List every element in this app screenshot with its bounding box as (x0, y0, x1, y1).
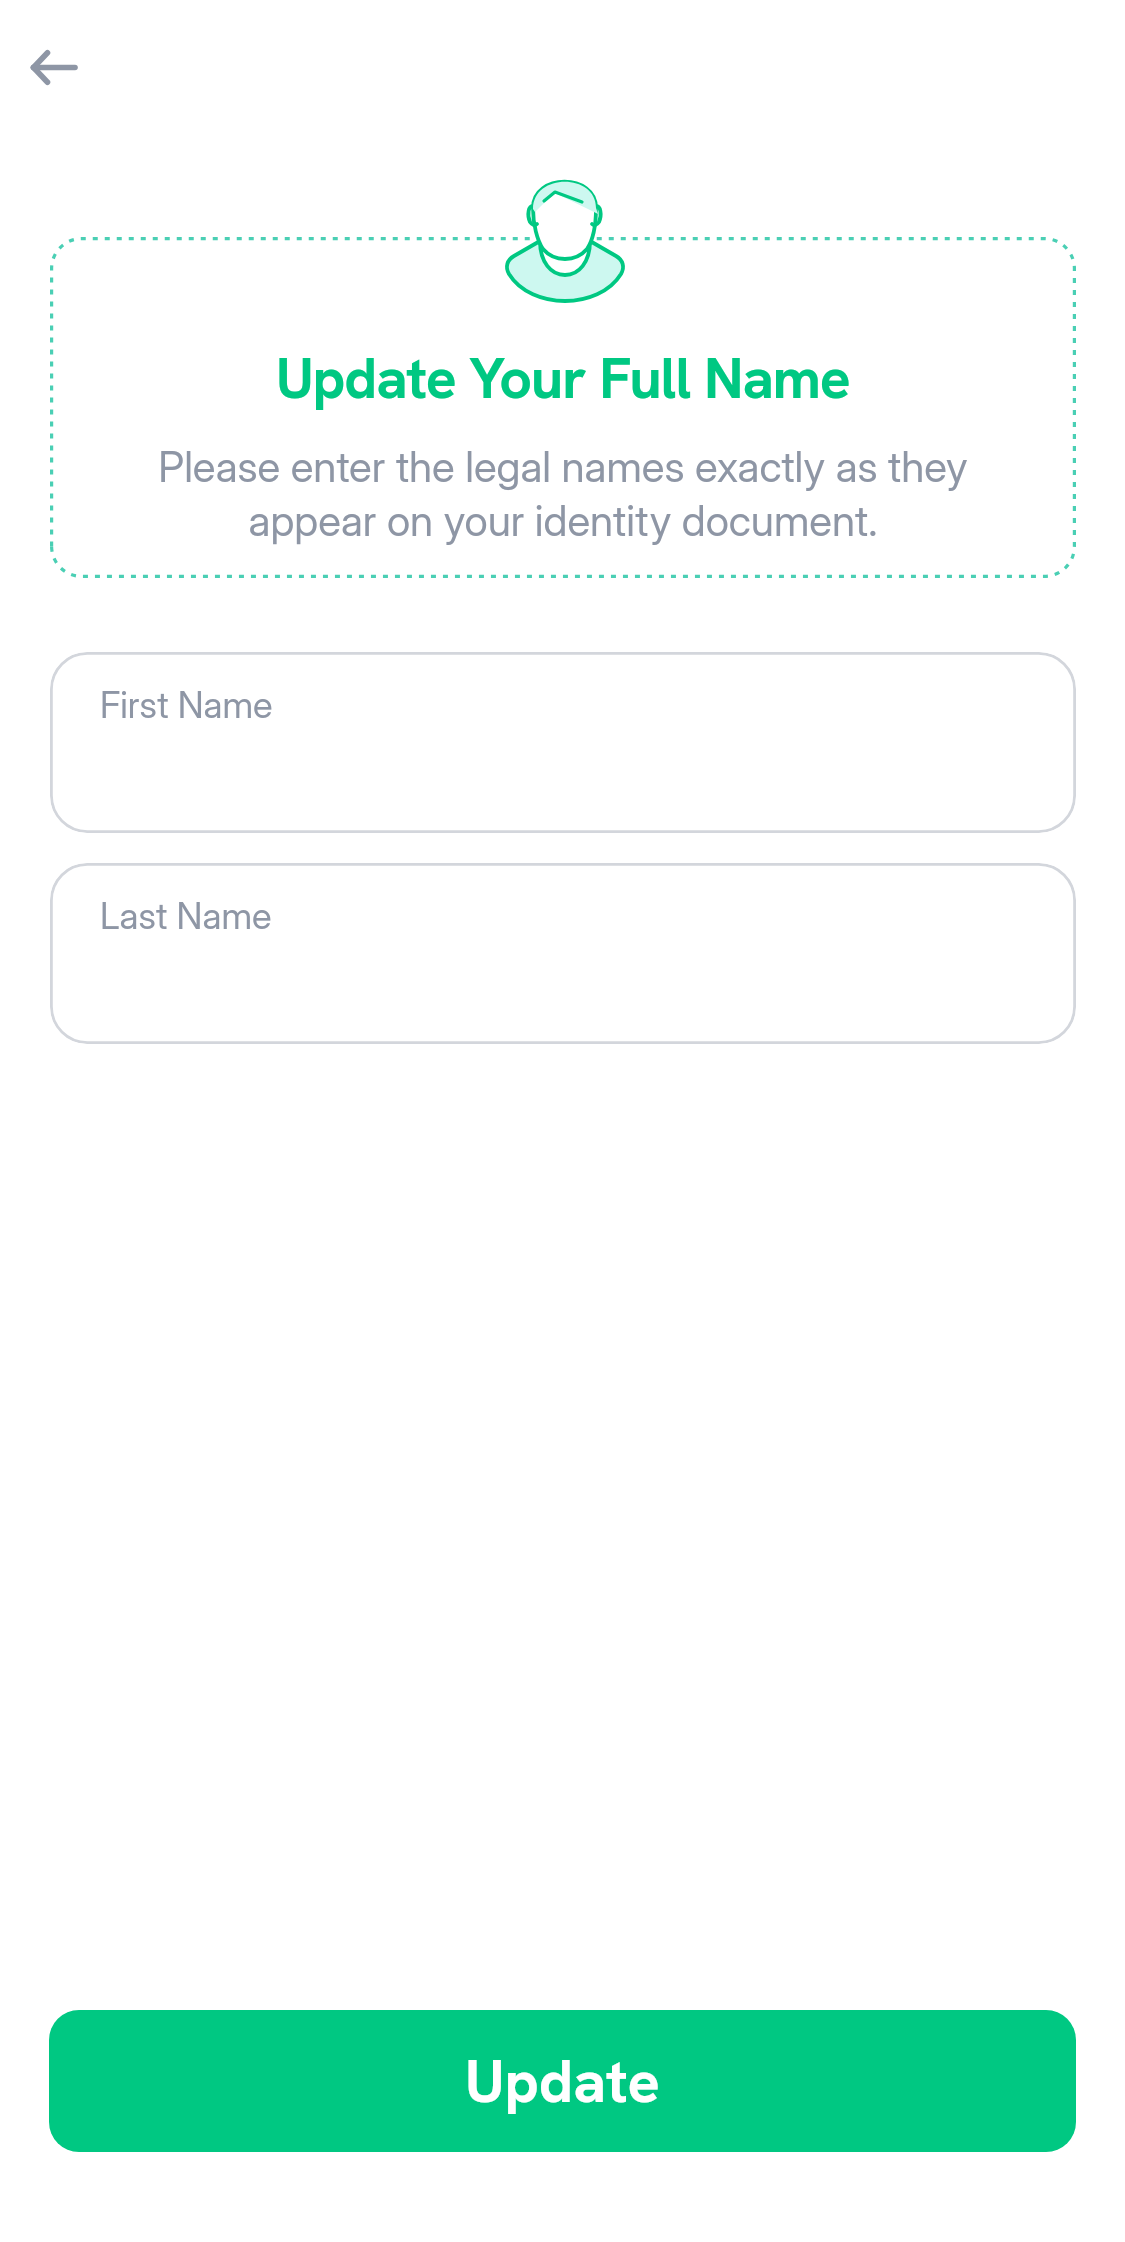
button[interactable]: Last Name (50, 863, 1076, 1044)
button[interactable]: Update (49, 2010, 1076, 2152)
button[interactable]: First Name (50, 652, 1076, 833)
staticText: Update (465, 2042, 660, 2120)
staticText: Last Name (100, 894, 272, 938)
staticText: Update Your Full Name (276, 341, 850, 416)
staticText: First Name (100, 683, 273, 727)
button[interactable]: Back (0, 0, 110, 110)
staticText: Please enter the legal names exactly as … (148, 441, 978, 546)
